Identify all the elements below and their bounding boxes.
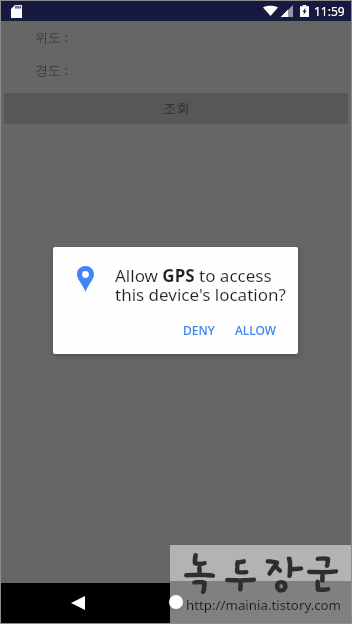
staticText: http://mainia.tistory.com xyxy=(186,596,342,614)
button[interactable]: ALLOW xyxy=(226,316,286,344)
button[interactable]: DENY xyxy=(174,316,224,344)
button[interactable]: Back xyxy=(71,596,85,610)
staticText: 11:59 xyxy=(314,3,345,19)
staticText: ALLOW xyxy=(235,322,277,338)
staticText: DENY xyxy=(183,322,215,338)
staticText: 위도 : xyxy=(35,28,68,46)
staticText: 경도 : xyxy=(35,61,68,79)
staticText: Allow GPS to access this device's locati… xyxy=(115,264,293,306)
staticText: 조회 xyxy=(163,100,190,117)
staticText: 녹두장군 xyxy=(179,551,343,601)
button[interactable]: Home xyxy=(169,595,183,609)
